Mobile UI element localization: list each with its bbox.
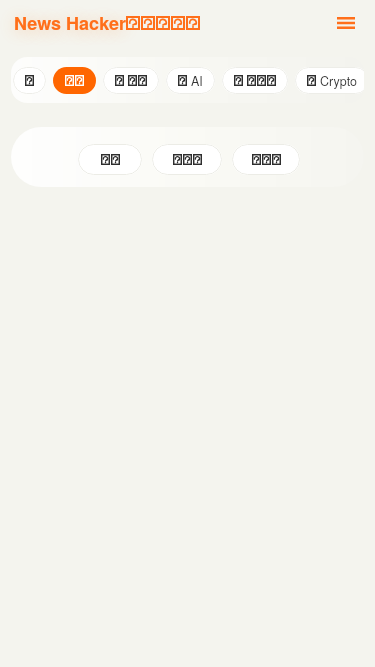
staticText: AI — [191, 72, 203, 90]
staticText: Crypto — [320, 72, 357, 90]
button[interactable] — [53, 67, 96, 94]
button[interactable] — [232, 144, 300, 175]
button[interactable] — [222, 67, 288, 94]
button[interactable] — [152, 144, 222, 175]
button[interactable] — [103, 67, 159, 94]
button[interactable]: AI — [166, 67, 215, 94]
button[interactable]: Crypto — [295, 67, 364, 94]
button[interactable]: Menu — [329, 6, 363, 40]
staticText: News Hacker — [14, 10, 126, 36]
button[interactable] — [13, 67, 46, 94]
button[interactable] — [78, 144, 142, 175]
